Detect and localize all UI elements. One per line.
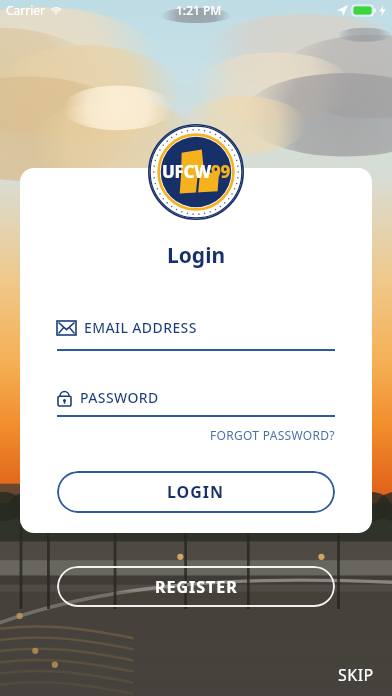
staticText: Carrier <box>6 2 46 18</box>
button[interactable]: SKIP <box>338 664 374 686</box>
staticText: PASSWORD <box>80 388 159 407</box>
staticText: 99 <box>211 160 231 183</box>
staticText: REGISTER <box>155 576 238 598</box>
button[interactable]: REGISTER <box>57 566 335 607</box>
button[interactable]: EMAIL ADDRESS <box>57 318 335 351</box>
button[interactable]: FORGOT PASSWORD? <box>210 425 335 445</box>
staticText: LOGIN <box>167 481 225 503</box>
button[interactable]: PASSWORD <box>57 388 335 417</box>
button[interactable]: LOGIN <box>57 471 335 513</box>
staticText: UFCW <box>162 160 211 183</box>
staticText: EMAIL ADDRESS <box>84 318 197 337</box>
staticText: Login <box>167 241 226 270</box>
staticText: 1:21 PM <box>176 2 222 18</box>
